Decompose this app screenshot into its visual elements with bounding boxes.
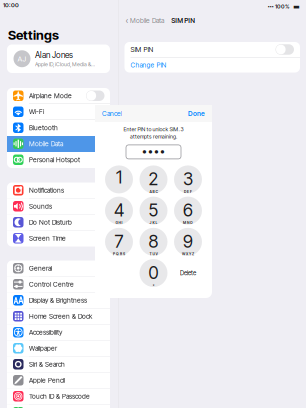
button[interactable]: Personal Hotspot <box>7 152 110 168</box>
staticText: Cancel <box>102 109 122 118</box>
button[interactable]: Wi-Fi <box>7 104 110 120</box>
staticText: Mobile Data <box>130 16 164 25</box>
staticText: 4 <box>114 200 124 221</box>
button[interactable]: 2 <box>139 165 167 193</box>
staticText: W X Y Z <box>182 252 194 256</box>
button[interactable]: Touch ID & Passcode <box>7 388 110 404</box>
button[interactable]: 5 <box>139 197 167 225</box>
staticText: G H I <box>115 221 122 225</box>
staticText: SIM PIN <box>130 45 153 54</box>
staticText: P Q R S <box>113 252 125 256</box>
staticText: Apple ID, iCloud, Media &… <box>35 61 95 67</box>
staticText: A B C <box>149 189 157 194</box>
staticText: Home Screen & Dock <box>29 312 92 320</box>
staticText: 2 <box>148 169 158 190</box>
staticText: Do Not Disturb <box>29 218 72 226</box>
staticText: Apple Pencil <box>29 376 65 384</box>
button[interactable]: Do Not Disturb <box>7 214 110 230</box>
staticText: Touch ID & Passcode <box>29 392 90 400</box>
staticText: Enter PIN to unlock SIM. 3 <box>123 126 183 132</box>
staticText: D E F <box>184 189 192 194</box>
staticText: Personal Hotspot <box>29 156 80 164</box>
staticText: Delete <box>180 269 196 277</box>
staticText: Screen Time <box>29 234 66 242</box>
button[interactable]: Airplane Mode <box>7 88 110 104</box>
button[interactable]: 8 <box>139 228 167 256</box>
staticText: Change PIN <box>130 61 166 69</box>
button[interactable]: Home Screen & Dock <box>7 308 110 324</box>
button[interactable]: Display & Brightness <box>7 292 110 308</box>
button[interactable]: Screen Time <box>7 230 110 246</box>
button[interactable]: Delete <box>174 259 202 287</box>
staticText: Siri & Search <box>29 360 65 368</box>
button[interactable]: Change PIN <box>124 57 300 72</box>
staticText: ‹ <box>125 15 128 26</box>
button[interactable]: Bluetooth <box>7 120 110 136</box>
button[interactable]: Cancel <box>95 105 126 122</box>
staticText: Airplane Mode <box>29 92 72 100</box>
button[interactable]: ‹ <box>118 13 168 28</box>
button[interactable]: General <box>7 260 110 276</box>
staticText: 10:00 <box>3 1 19 9</box>
staticText: Wi-Fi <box>29 108 44 116</box>
button[interactable]: Notifications <box>7 182 110 198</box>
button[interactable]: Control Centre <box>7 276 110 292</box>
staticText: General <box>29 264 52 272</box>
staticText: attempts remaining. <box>130 133 177 140</box>
staticText: Settings <box>8 27 59 43</box>
staticText: SIM PIN <box>171 16 195 25</box>
button[interactable]: Apple Pencil <box>7 372 110 388</box>
button[interactable]: Accessibility <box>7 324 110 340</box>
staticText: Display & Brightness <box>29 296 87 304</box>
button[interactable]: Mobile Data <box>7 136 110 152</box>
staticText: 1 <box>116 167 122 188</box>
staticText: 9 <box>183 231 193 252</box>
staticText: + <box>152 283 154 287</box>
button[interactable]: Siri & Search <box>7 356 110 372</box>
staticText: 5 <box>148 200 158 221</box>
staticText: AJ <box>17 54 26 63</box>
staticText: Sounds <box>29 202 52 210</box>
button[interactable]: AJ <box>7 44 110 73</box>
button[interactable]: 9 <box>174 228 202 256</box>
button[interactable]: Battery <box>7 404 110 408</box>
staticText: ▬ <box>290 2 300 11</box>
staticText: Mobile Data <box>29 140 63 148</box>
staticText: M N O <box>183 221 193 225</box>
staticText: ● ● ● ● <box>142 149 164 155</box>
staticText: Done <box>188 109 205 118</box>
button[interactable]: Sounds <box>7 198 110 214</box>
button[interactable]: Done <box>184 105 212 122</box>
button[interactable]: Wallpaper <box>7 340 110 356</box>
staticText: 0 <box>148 262 158 283</box>
staticText: Alan Jones <box>35 50 73 60</box>
button[interactable]: 3 <box>174 165 202 193</box>
staticText: 7 <box>114 231 123 252</box>
button[interactable]: 0 <box>139 259 167 287</box>
staticText: Control Centre <box>29 280 74 288</box>
staticText: J K L <box>149 221 157 225</box>
staticText: Wallpaper <box>29 344 57 352</box>
button[interactable]: 1 <box>105 165 133 193</box>
staticText: 100% <box>274 3 290 10</box>
staticText: 8 <box>148 231 158 252</box>
staticText: Accessibility <box>29 328 62 336</box>
button[interactable]: 7 <box>105 228 133 256</box>
button[interactable]: 4 <box>105 197 133 225</box>
staticText: ▪▪▪ <box>268 4 274 9</box>
staticText: Notifications <box>29 186 64 194</box>
staticText: T U V <box>149 252 157 256</box>
staticText: 6 <box>183 200 193 221</box>
staticText: 3 <box>183 169 193 190</box>
staticText: Bluetooth <box>29 124 58 132</box>
button[interactable]: SIM PIN <box>275 44 294 55</box>
button[interactable]: 6 <box>174 197 202 225</box>
